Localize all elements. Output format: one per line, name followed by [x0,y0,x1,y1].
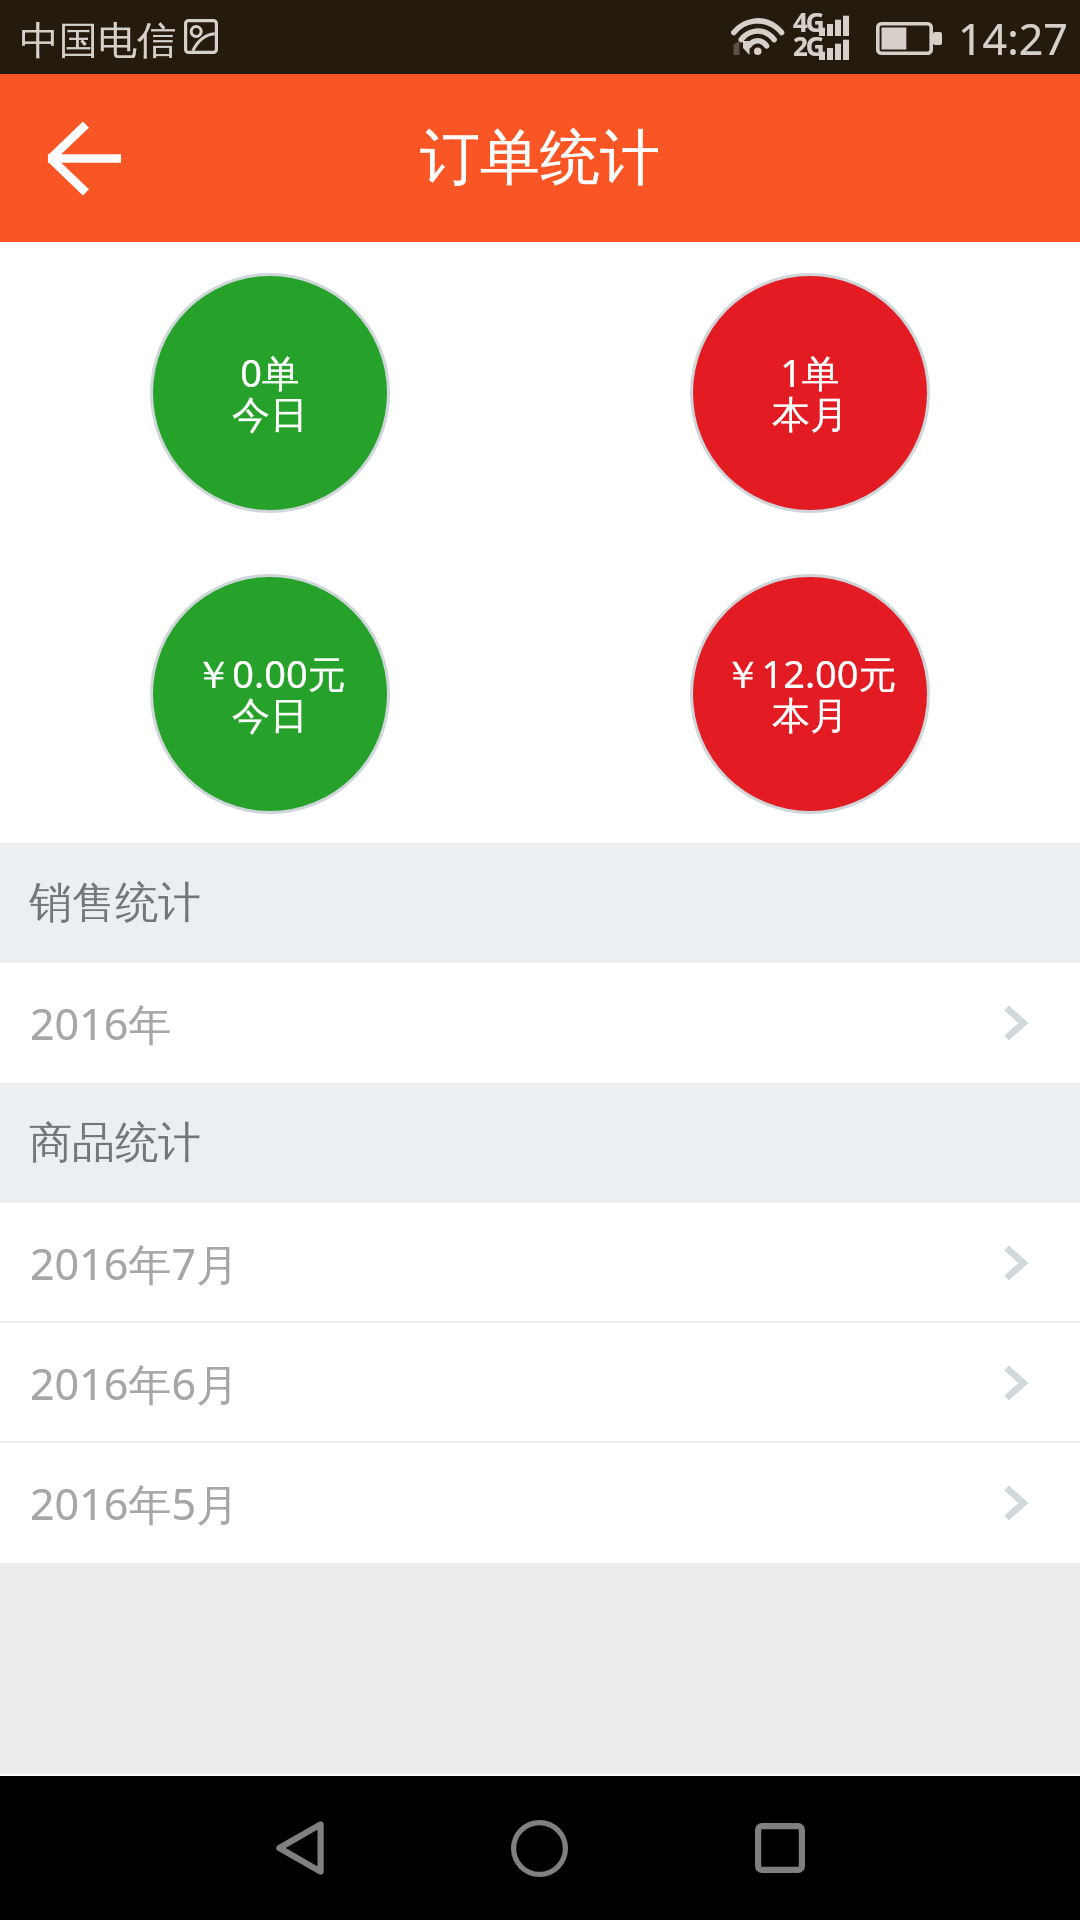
staticText: 2G [793,28,823,63]
button[interactable]: Back [240,1776,360,1920]
staticText: ￥12.00元 本月 [723,647,897,741]
staticText: 2016年6月 [30,1354,239,1413]
staticText: 2016年 [30,994,172,1053]
staticText: 2016年5月 [30,1474,239,1533]
button[interactable]: 0单 今日 [153,276,387,510]
button[interactable]: 2016年7月 [0,1203,1080,1323]
staticText: 商品统计 [29,1116,201,1170]
button[interactable]: Home [479,1776,599,1920]
button[interactable]: Back [0,74,168,242]
button[interactable]: ￥12.00元 本月 [693,577,927,811]
staticText: 14:27 [958,9,1068,68]
button[interactable]: 2016年6月 [0,1323,1080,1443]
staticText: 中国电信 [20,16,176,65]
button[interactable]: Recent apps [720,1776,840,1920]
staticText: 0单 今日 [232,346,308,440]
staticText: 2016年7月 [30,1234,239,1293]
button[interactable]: 2016年 [0,963,1080,1083]
button[interactable]: 2016年5月 [0,1443,1080,1563]
button[interactable]: 1单 本月 [693,276,927,510]
staticText: 订单统计 [420,120,660,196]
staticText: 1单 本月 [772,346,848,440]
button[interactable]: ￥0.00元 今日 [153,577,387,811]
staticText: 4G [793,4,823,39]
staticText: 销售统计 [29,876,201,930]
staticText: ￥0.00元 今日 [194,647,346,741]
